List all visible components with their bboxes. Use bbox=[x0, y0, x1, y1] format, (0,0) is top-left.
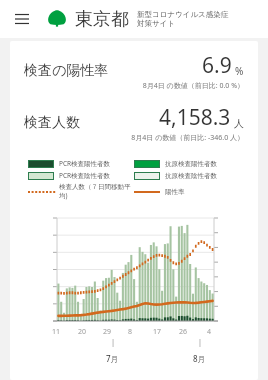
button[interactable]: PCR検査陰性者数 bbox=[28, 171, 134, 180]
staticText: 新型コロナウイルス感染症 bbox=[137, 10, 229, 19]
staticText: 7月 bbox=[106, 353, 119, 364]
staticText: 11 bbox=[52, 327, 61, 337]
staticText: 8月 bbox=[193, 353, 206, 364]
button[interactable]: 抗原検査陽性者数 bbox=[134, 160, 240, 168]
staticText: 8月4日 の数値（前日比: 0.0 %） bbox=[24, 81, 244, 91]
staticText: 対策サイト bbox=[137, 19, 176, 28]
staticText: PCR検査陽性者数 bbox=[59, 159, 111, 168]
staticText: 検査人数（７日間移動平均) bbox=[59, 183, 134, 200]
staticText: % bbox=[235, 64, 244, 78]
staticText: 検査の陽性率 bbox=[24, 62, 109, 80]
staticText: 29 bbox=[103, 327, 112, 337]
staticText: 17 bbox=[153, 327, 162, 337]
staticText: 4,158.3 bbox=[159, 103, 231, 132]
staticText: 抗原検査陰性者数 bbox=[165, 172, 217, 180]
staticText: 人 bbox=[234, 117, 244, 130]
staticText: 4 bbox=[207, 327, 212, 337]
button[interactable]: 抗原検査陰性者数 bbox=[134, 172, 240, 180]
staticText: PCR検査陰性者数 bbox=[59, 171, 111, 180]
staticText: 8 bbox=[128, 327, 133, 337]
button[interactable]: 陽性率 bbox=[134, 188, 240, 196]
button[interactable]: 検査人数（７日間移動平均) bbox=[28, 183, 134, 200]
staticText: 6.9 bbox=[202, 51, 232, 80]
staticText: 陽性率 bbox=[165, 188, 185, 196]
staticText: 抗原検査陽性者数 bbox=[165, 160, 217, 168]
staticText: 26 bbox=[179, 327, 188, 337]
staticText: 検査人数 bbox=[24, 114, 80, 132]
button[interactable]: 6000 bbox=[10, 208, 258, 373]
staticText: 20 bbox=[78, 327, 87, 337]
button[interactable]: Menu bbox=[12, 9, 32, 29]
staticText: 8月4日 の数値（前日比: -346.0 人） bbox=[24, 133, 244, 143]
staticText: 東京都 bbox=[75, 8, 129, 31]
button[interactable]: PCR検査陽性者数 bbox=[28, 159, 134, 168]
